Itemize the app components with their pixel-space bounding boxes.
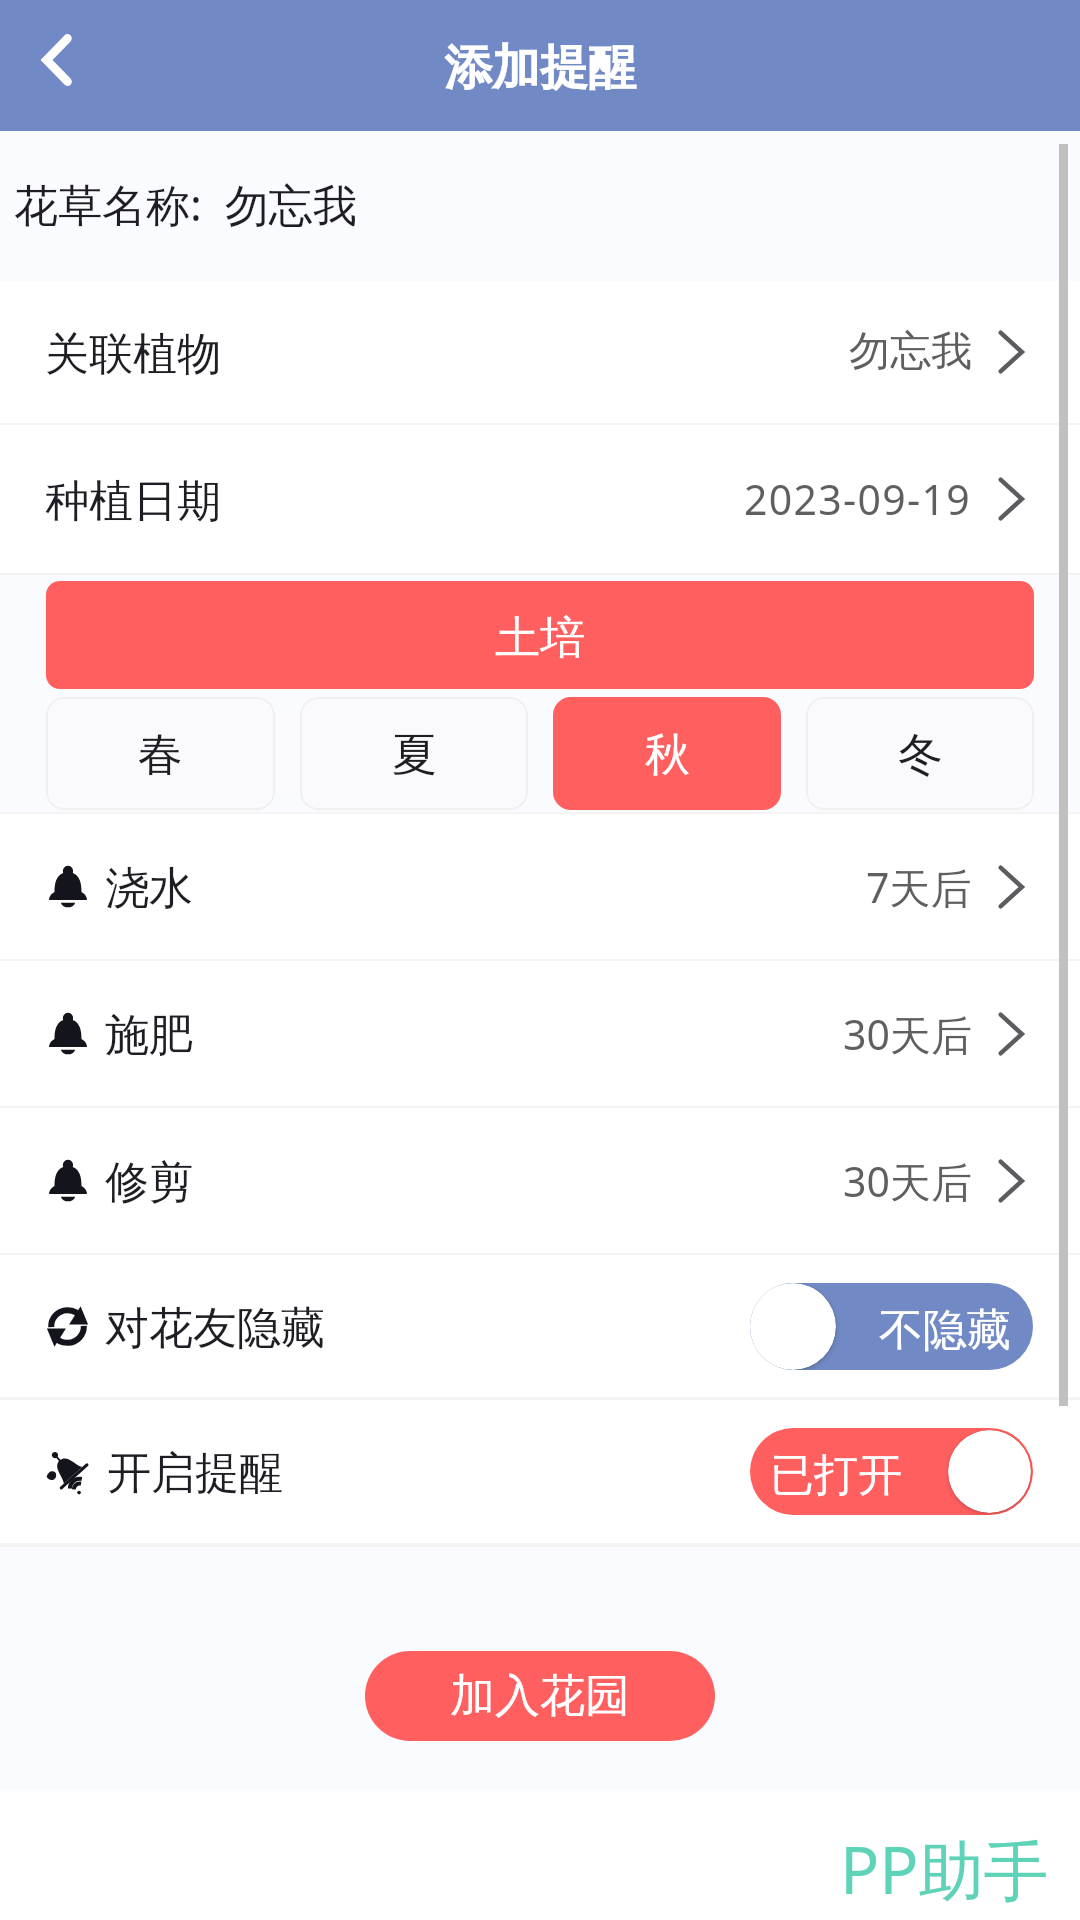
staticText: 不隐藏: [879, 1303, 1011, 1358]
button[interactable]: 不隐藏: [750, 1283, 1033, 1370]
staticText: 种植日期: [45, 474, 221, 529]
staticText: 土培: [495, 610, 585, 667]
button[interactable]: 春: [46, 697, 275, 810]
staticText: 开启提醒: [107, 1446, 283, 1501]
staticText: 春: [138, 727, 183, 784]
button[interactable]: 冬: [806, 697, 1034, 810]
button[interactable]: 施肥: [0, 961, 1080, 1106]
button[interactable]: 对花友隐藏: [0, 1255, 1080, 1397]
staticText: 7天后: [866, 859, 972, 915]
staticText: 浇水: [105, 861, 193, 916]
staticText: 添加提醒: [444, 38, 636, 98]
staticText: 加入花园: [450, 1668, 630, 1725]
staticText: 修剪: [105, 1155, 193, 1210]
staticText: 冬: [898, 727, 943, 784]
staticText: 花草名称: 勿忘我: [14, 174, 357, 234]
button[interactable]: 秋: [553, 697, 781, 810]
button[interactable]: 夏: [300, 697, 528, 810]
staticText: 对花友隐藏: [105, 1301, 325, 1356]
button[interactable]: 开启提醒: [0, 1400, 1080, 1543]
staticText: 30天后: [843, 1153, 972, 1209]
staticText: PP助手: [840, 1825, 1049, 1914]
button[interactable]: 浇水: [0, 814, 1080, 959]
button[interactable]: 关联植物: [0, 281, 1080, 423]
button[interactable]: Back: [0, 0, 114, 131]
staticText: 施肥: [105, 1008, 193, 1063]
staticText: 关联植物: [45, 327, 221, 382]
staticText: 30天后: [843, 1006, 972, 1062]
button[interactable]: 种植日期: [0, 425, 1080, 573]
staticText: 夏: [392, 727, 437, 784]
staticText: 2023-09-19: [744, 471, 972, 527]
staticText: 勿忘我: [849, 326, 972, 378]
button[interactable]: 土培: [46, 581, 1034, 689]
staticText: 秋: [645, 727, 690, 784]
staticText: 已打开: [770, 1448, 902, 1503]
button[interactable]: 修剪: [0, 1108, 1080, 1253]
button[interactable]: 已打开: [750, 1428, 1033, 1515]
button[interactable]: 加入花园: [365, 1651, 715, 1741]
